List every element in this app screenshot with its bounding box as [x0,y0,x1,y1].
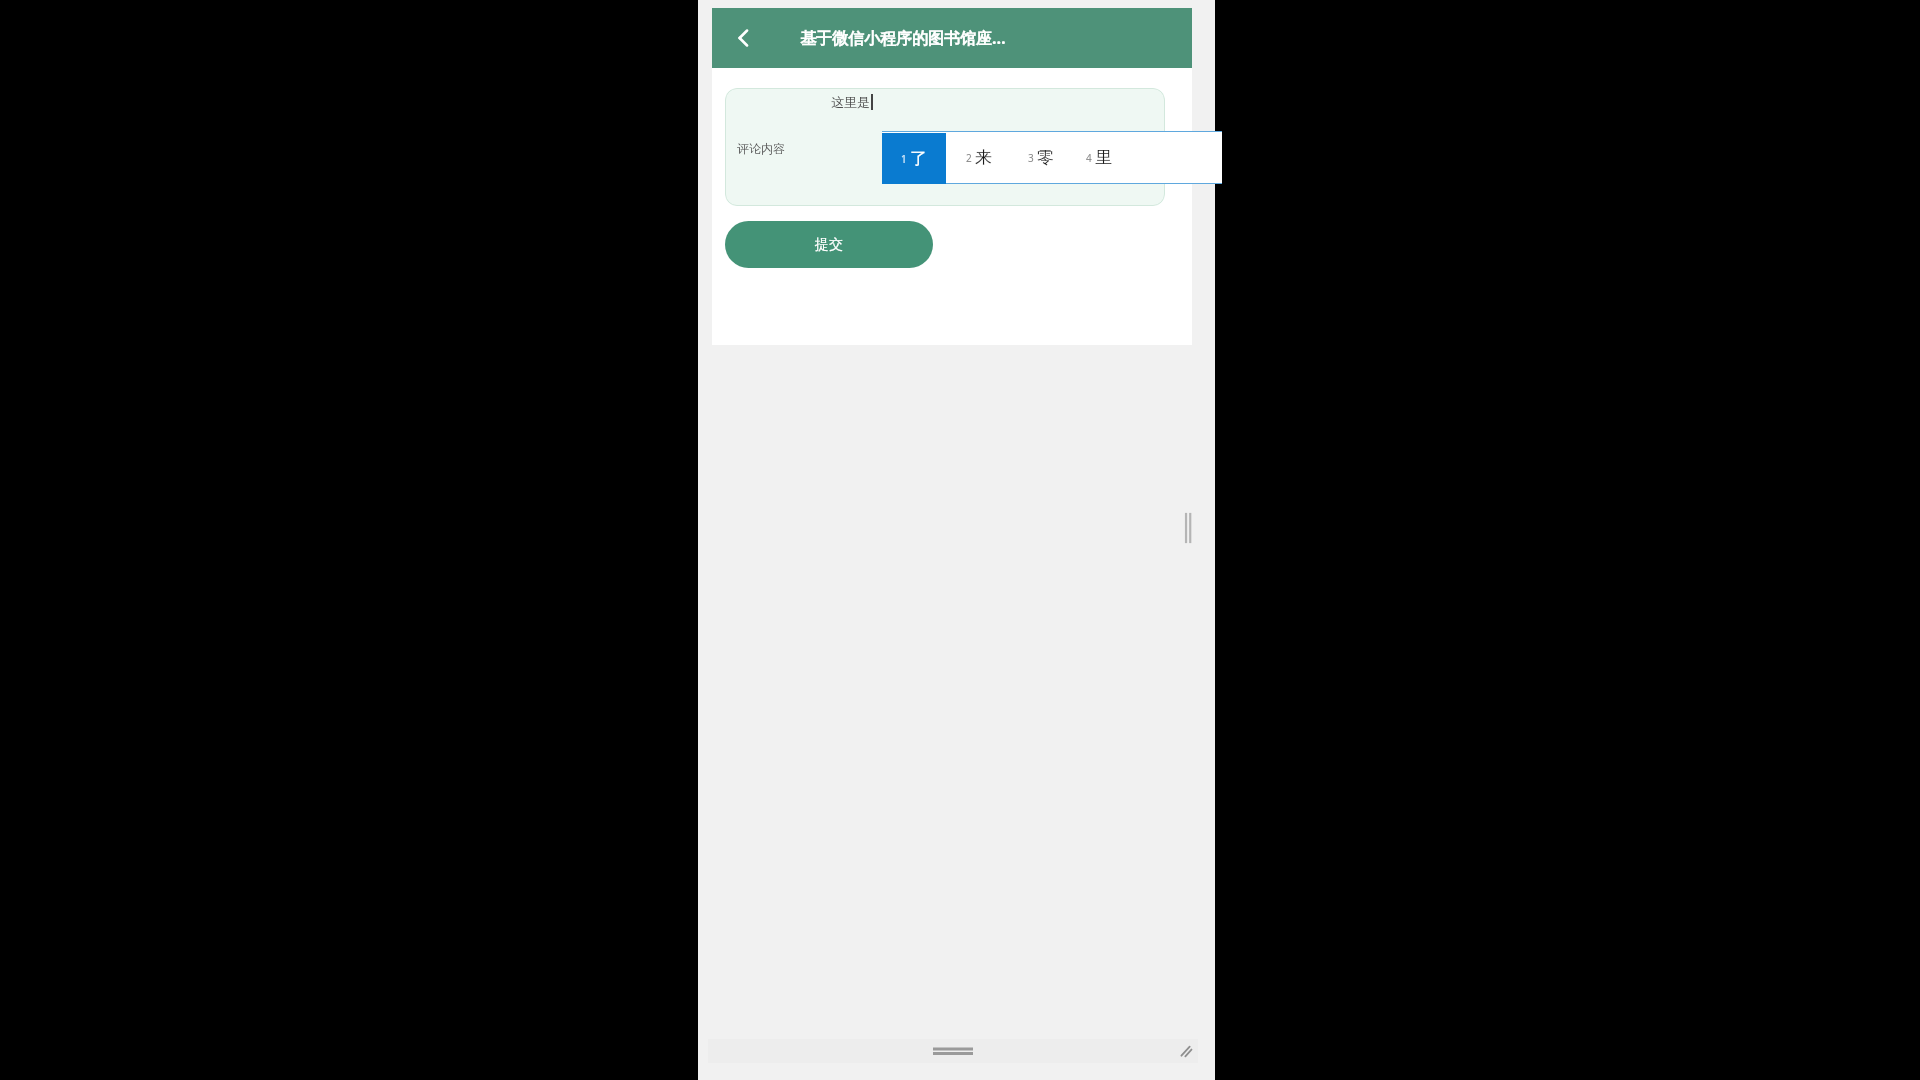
staticText: 3 [1028,151,1034,165]
staticText: 2 [966,151,972,165]
button[interactable]: Back [720,14,768,62]
button[interactable]: 评论内容 [725,88,1165,206]
staticText: 这里是 [831,94,870,110]
button[interactable]: 提交 [725,221,933,268]
button[interactable]: Resize window [1181,510,1195,546]
staticText: 零 [1037,147,1054,168]
staticText: 里 [1095,147,1112,168]
staticText: 评论内容 [737,141,785,156]
staticText: 提交 [815,236,843,254]
button[interactable]: Resize [1176,1042,1194,1060]
staticText: 了 [910,148,927,169]
button[interactable]: 3 [1012,131,1070,184]
staticText: 来 [975,147,992,168]
button[interactable]: 4 [1070,131,1128,184]
staticText: 1 [901,152,907,166]
button[interactable]: 1 [882,133,946,184]
staticText: 4 [1086,151,1092,165]
button[interactable]: 2 [946,131,1012,184]
staticText: 基于微信小程序的图书馆座… [800,27,1006,49]
